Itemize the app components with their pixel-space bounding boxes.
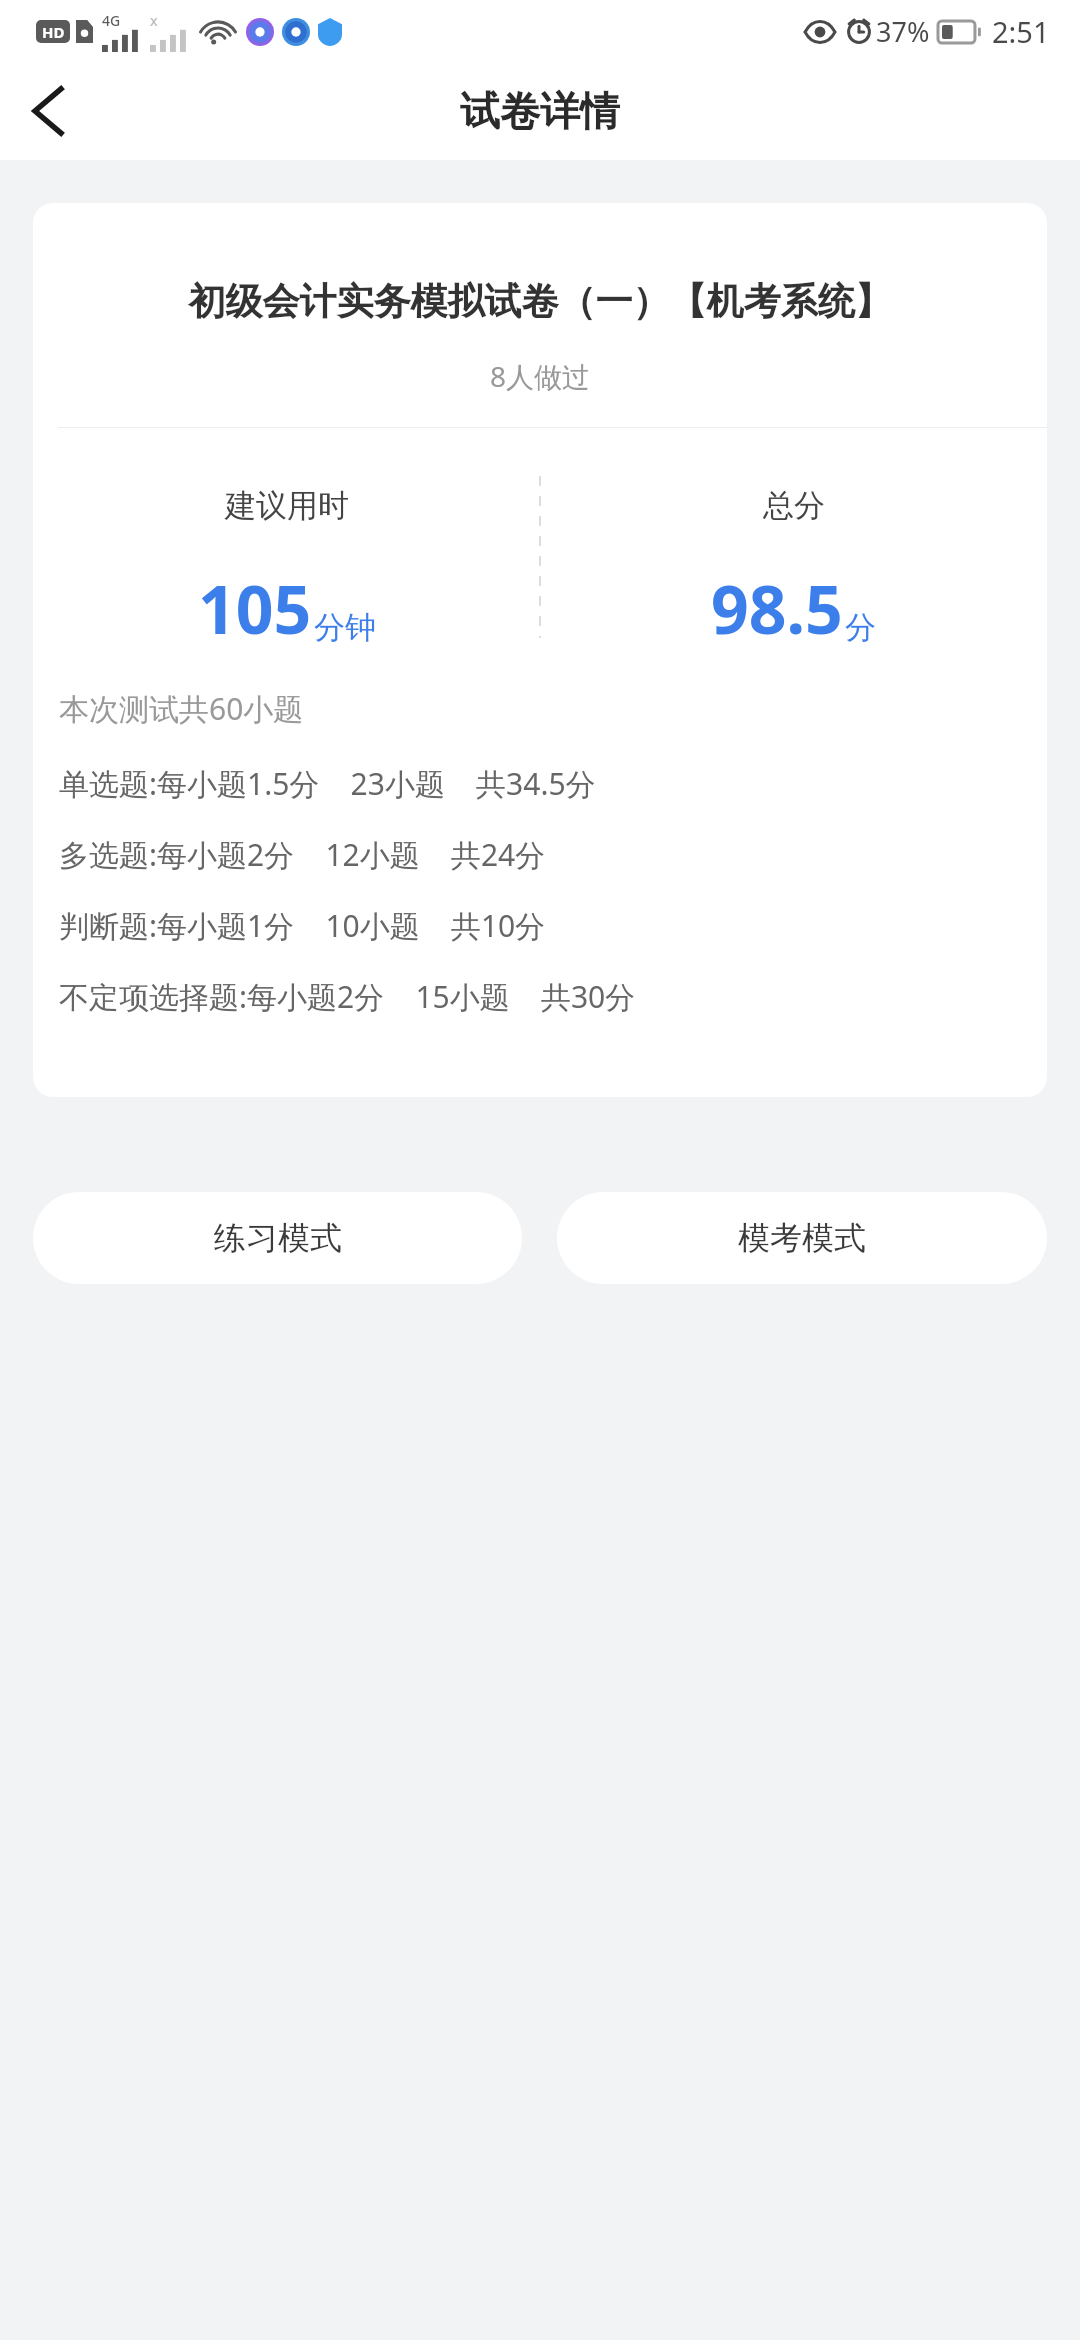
staticText: 模考模式 [738, 1218, 866, 1258]
staticText: 单选题:每小题1.5分 23小题 共34.5分 [59, 763, 596, 804]
staticText: 判断题:每小题1分 10小题 共10分 [59, 905, 546, 946]
staticText: 试卷详情 [460, 86, 620, 136]
staticText: 37% [876, 13, 930, 50]
staticText: 不定项选择题:每小题2分 15小题 共30分 [59, 976, 636, 1017]
staticText: 练习模式 [214, 1218, 342, 1258]
button[interactable]: Back [8, 71, 88, 151]
staticText: HD [42, 22, 65, 42]
staticText: 本次测试共60小题 [59, 688, 304, 729]
staticText: 多选题:每小题2分 12小题 共24分 [59, 834, 546, 875]
staticText: x [150, 11, 158, 30]
staticText: 总分 [763, 486, 825, 525]
button[interactable]: 模考模式 [557, 1192, 1047, 1284]
staticText: 初级会计实务模拟试卷（一）【机考系统】 [55, 278, 1025, 325]
staticText: 105 [198, 563, 312, 653]
staticText: 4G [102, 11, 121, 30]
staticText: 分钟 [314, 608, 376, 647]
staticText: 2:51 [992, 12, 1050, 51]
staticText: 建议用时 [225, 486, 349, 525]
staticText: 98.5 [711, 563, 843, 653]
staticText: 分 [845, 608, 876, 647]
button[interactable]: 练习模式 [33, 1192, 522, 1284]
staticText: 8人做过 [33, 357, 1047, 395]
